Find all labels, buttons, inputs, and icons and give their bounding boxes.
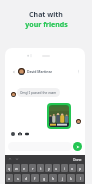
staticText: s bbox=[17, 176, 19, 181]
staticText: t bbox=[40, 166, 42, 171]
button[interactable]: s bbox=[14, 174, 21, 182]
button[interactable]: Previous field bbox=[8, 157, 12, 161]
staticText: Chat with bbox=[29, 10, 63, 20]
staticText: a bbox=[8, 176, 11, 181]
staticText: Omg! I passed the exam bbox=[20, 91, 57, 95]
button[interactable]: y bbox=[45, 164, 52, 172]
button[interactable]: l bbox=[76, 174, 84, 182]
staticText: e bbox=[23, 166, 26, 171]
button[interactable]: Photo bbox=[47, 103, 71, 129]
button[interactable]: r bbox=[29, 164, 36, 172]
button[interactable]: k bbox=[67, 174, 75, 182]
staticText: k bbox=[70, 176, 72, 181]
button[interactable]: g bbox=[40, 174, 48, 182]
staticText: r bbox=[32, 166, 34, 171]
button[interactable]: Next field bbox=[15, 157, 19, 161]
button[interactable]: Omg! I passed the exam bbox=[17, 88, 60, 97]
button[interactable]: u bbox=[53, 164, 60, 172]
button[interactable]: j bbox=[58, 174, 66, 182]
staticText: q bbox=[8, 166, 11, 171]
button[interactable]: h bbox=[49, 174, 57, 182]
button[interactable]: a bbox=[6, 174, 13, 182]
button[interactable]: Done bbox=[73, 157, 82, 162]
button[interactable]: d bbox=[22, 174, 30, 182]
staticText: h bbox=[52, 176, 55, 181]
staticText: d bbox=[25, 176, 28, 181]
staticText: your friends bbox=[25, 20, 68, 30]
button[interactable]: e bbox=[21, 164, 28, 172]
button[interactable]: o bbox=[69, 164, 76, 172]
button[interactable]: q bbox=[6, 164, 12, 172]
staticText: i bbox=[64, 166, 65, 171]
staticText: j bbox=[62, 176, 63, 181]
button[interactable]: t bbox=[37, 164, 44, 172]
staticText: f bbox=[34, 176, 36, 181]
staticText: y bbox=[48, 166, 50, 171]
button[interactable]: Back bbox=[10, 68, 17, 75]
button[interactable]: i bbox=[61, 164, 68, 172]
button[interactable]: Camera bbox=[16, 130, 23, 137]
button[interactable]: Send bbox=[73, 142, 82, 151]
button[interactable]: p bbox=[77, 164, 84, 172]
button[interactable]: More options bbox=[74, 67, 82, 75]
staticText: David Martinez bbox=[27, 69, 52, 74]
staticText: l bbox=[80, 176, 81, 181]
button[interactable]: Emoji bbox=[9, 130, 16, 137]
button[interactable]: Gallery bbox=[23, 130, 30, 137]
staticText: g bbox=[43, 176, 46, 181]
button[interactable]: f bbox=[31, 174, 39, 182]
staticText: u bbox=[55, 166, 58, 171]
staticText: o bbox=[71, 166, 74, 171]
staticText: p bbox=[79, 166, 82, 171]
staticText: w bbox=[15, 166, 18, 171]
button[interactable]: w bbox=[13, 164, 20, 172]
